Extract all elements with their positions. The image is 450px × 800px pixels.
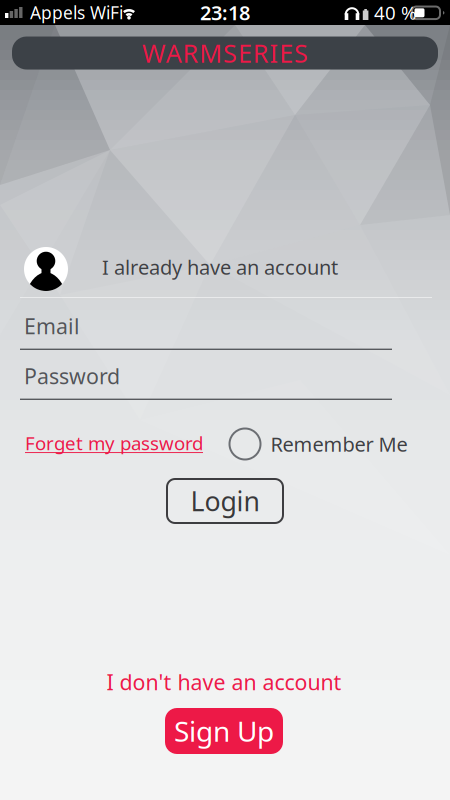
button[interactable]: Remember Me [229,428,440,459]
staticText: I already have an account [102,254,338,280]
button[interactable]: Sign Up [165,708,283,754]
staticText: 40 % [374,0,417,25]
staticText: Forget my password [25,431,203,455]
staticText: Email [24,312,80,340]
button[interactable]: Forget my password [25,431,245,455]
staticText: Appels WiFi [30,1,123,24]
staticText: Password [24,362,120,390]
staticText: 23:18 [200,0,250,26]
staticText: Remember Me [270,431,407,457]
button[interactable]: Password [20,360,392,404]
staticText: WARMSERIES [142,36,308,70]
button[interactable]: Email [20,310,392,354]
staticText: Sign Up [174,712,274,750]
staticText: I don't have an account [106,668,341,696]
staticText: Login [190,483,259,519]
button[interactable]: Login [166,478,284,524]
